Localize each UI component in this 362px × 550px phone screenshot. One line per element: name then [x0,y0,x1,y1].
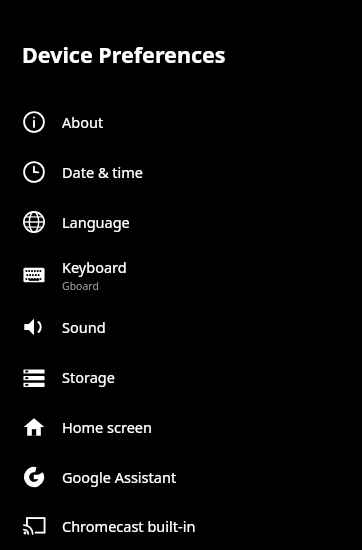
button[interactable]: Storage [0,352,362,402]
button[interactable]: Chromecast built-in [0,502,362,550]
button[interactable]: About [0,97,362,147]
button[interactable]: Sound [0,302,362,352]
staticText: Chromecast built-in [62,516,196,536]
button[interactable]: Language [0,197,362,247]
staticText: About [62,112,104,132]
button[interactable]: Date & time [0,147,362,197]
button[interactable]: Keyboard [0,247,362,302]
staticText: Device Preferences [22,40,226,69]
staticText: Google Assistant [62,467,177,487]
staticText: Language [62,212,130,232]
button[interactable]: Home screen [0,402,362,452]
staticText: Home screen [62,417,152,437]
staticText: Storage [62,367,115,387]
staticText: Date & time [62,162,143,182]
button[interactable]: Google Assistant [0,452,362,502]
staticText: Keyboard [62,257,127,277]
staticText: Sound [62,317,106,337]
staticText: Gboard [62,279,99,293]
